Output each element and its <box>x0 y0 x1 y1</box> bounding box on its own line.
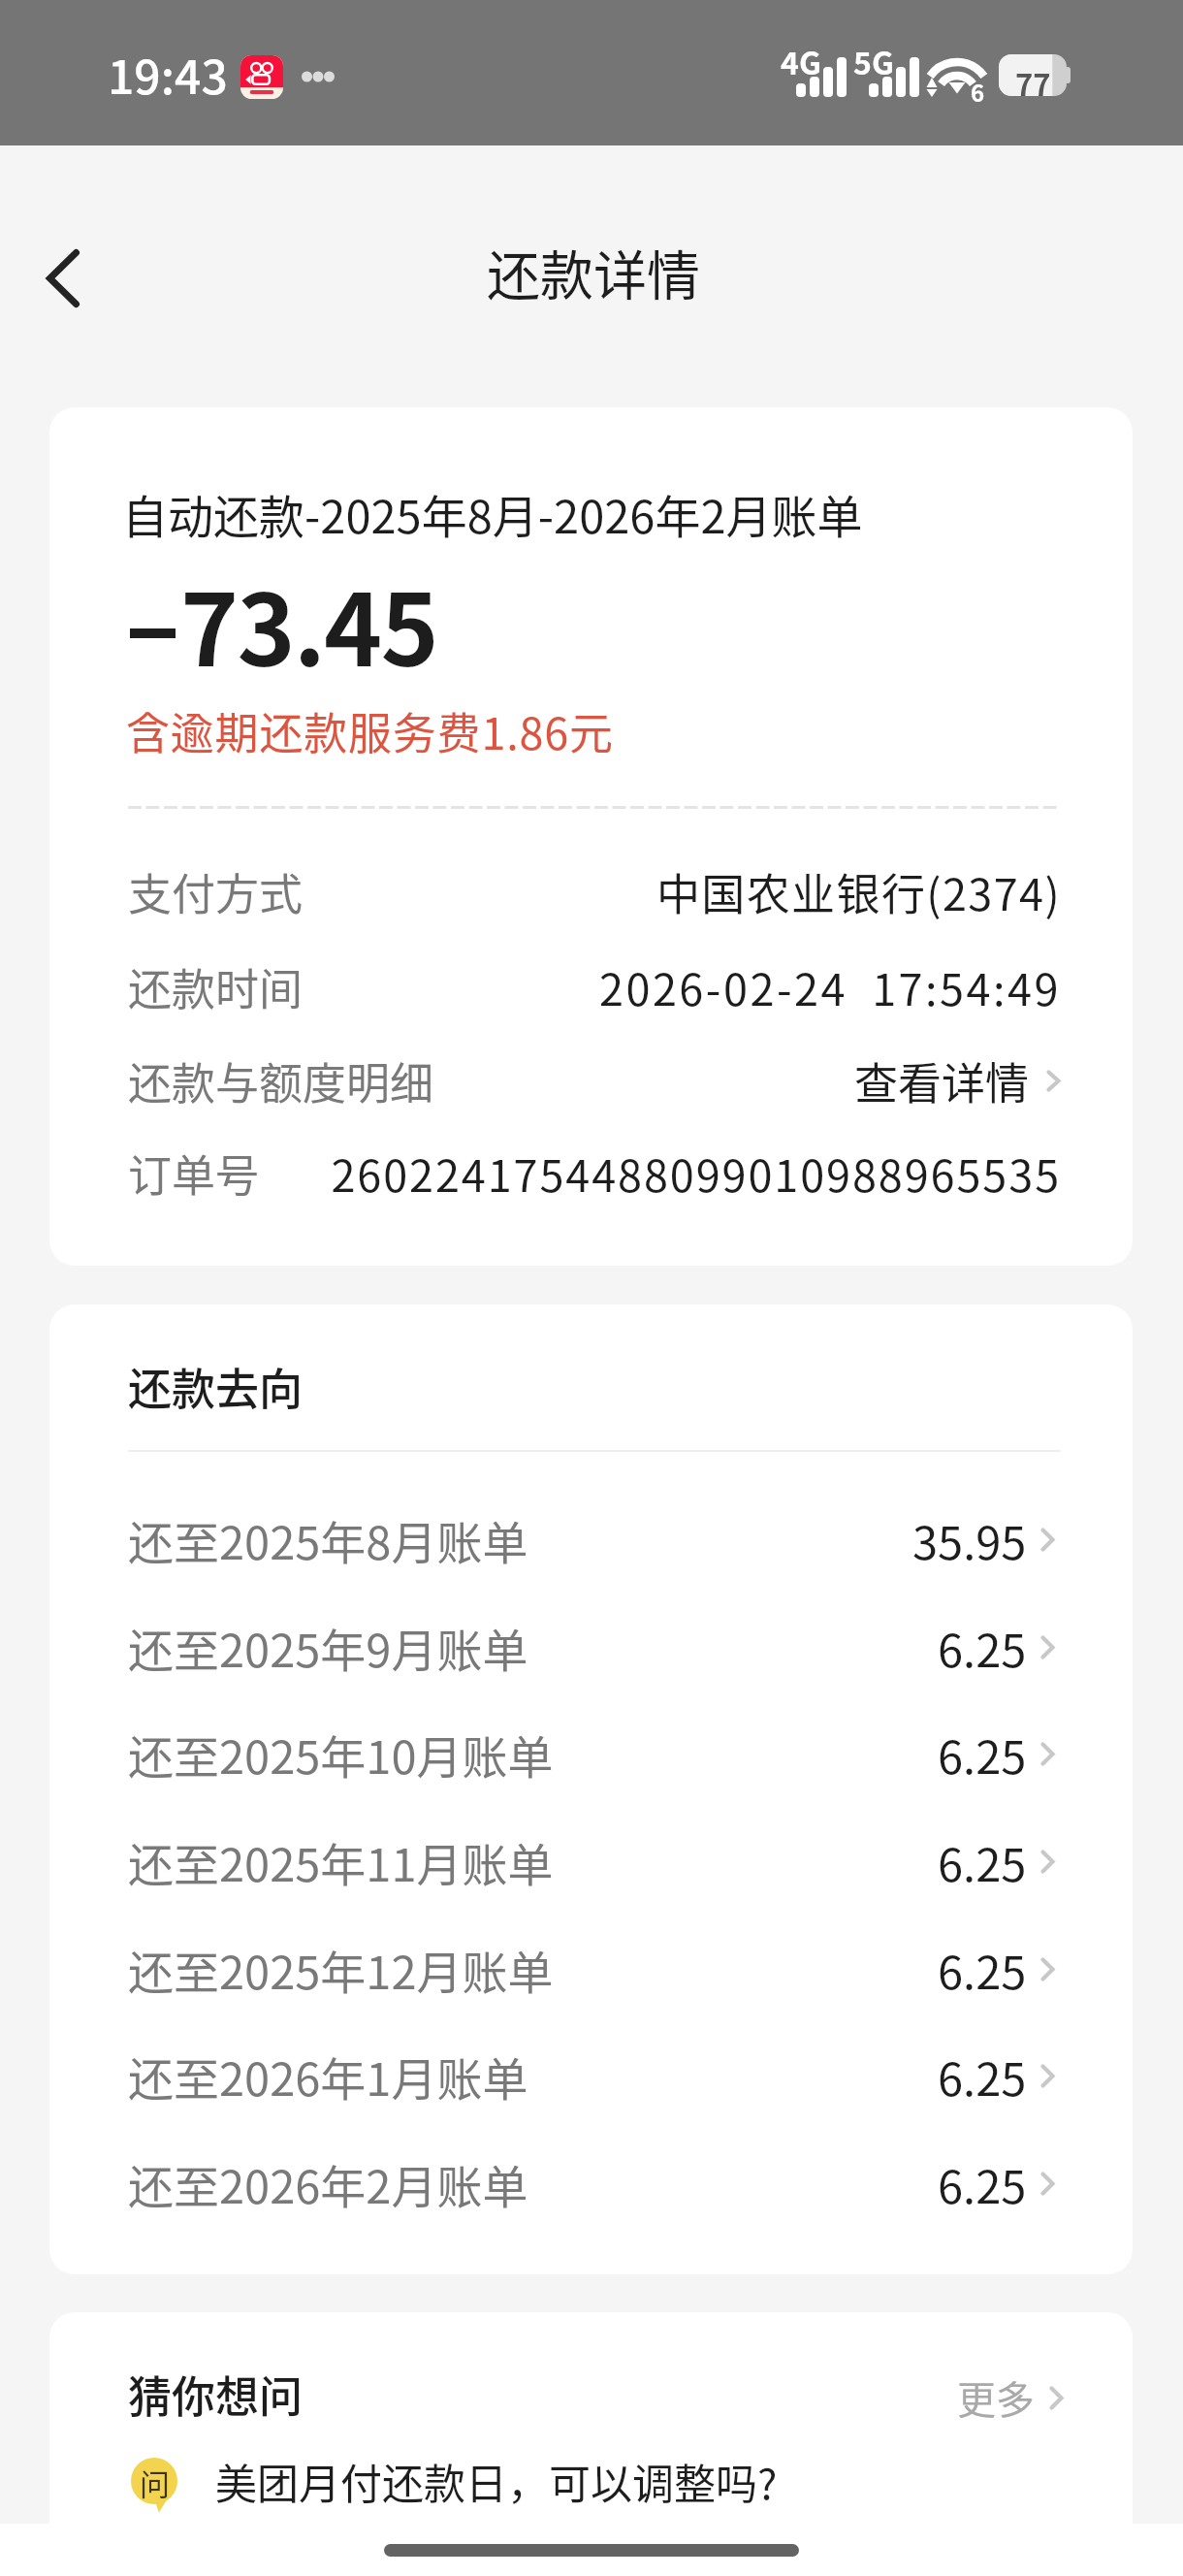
staticText: 自动还款-2025年8月-2026年2月账单 <box>122 480 863 546</box>
button[interactable]: 还款时间 <box>128 940 1061 1033</box>
staticText: 35.95 <box>912 1506 1027 1572</box>
staticText: 还至2025年9月账单 <box>128 1614 528 1680</box>
staticText: 还至2026年1月账单 <box>128 2043 528 2109</box>
button[interactable]: 还至2025年9月账单 <box>128 1594 1055 1700</box>
button[interactable]: 还至2026年1月账单 <box>128 2022 1055 2129</box>
staticText: 73.45 <box>180 552 437 695</box>
staticText: 还款与额度明细 <box>128 1049 434 1112</box>
staticText: 还至2026年2月账单 <box>128 2150 528 2216</box>
staticText: 订单号 <box>128 1142 260 1205</box>
staticText: 2602241754488099010988965535 <box>270 1142 1061 1205</box>
button[interactable]: 还至2025年10月账单 <box>128 1700 1055 1807</box>
button[interactable]: 支付方式 <box>128 845 1061 938</box>
button[interactable]: 还款与额度明细 <box>128 1034 1061 1127</box>
button[interactable]: 还至2025年8月账单 <box>128 1486 1055 1593</box>
staticText: 6.25 <box>938 2043 1027 2109</box>
button[interactable]: 还至2025年12月账单 <box>128 1916 1055 2022</box>
staticText: 还至2025年8月账单 <box>128 1506 528 1572</box>
staticText: 支付方式 <box>128 860 304 923</box>
staticText: 77 <box>1015 61 1051 105</box>
button[interactable]: 更多 <box>957 2360 1064 2435</box>
button[interactable]: 订单号 <box>128 1126 1061 1219</box>
staticText: 2026-02-24 17:54:49 <box>313 955 1061 1018</box>
button[interactable]: 还至2025年11月账单 <box>128 1808 1055 1915</box>
staticText: 还款时间 <box>128 955 304 1018</box>
staticText: 19:43 <box>108 40 228 108</box>
staticText: 还至2025年11月账单 <box>128 1828 554 1894</box>
staticText: 6.25 <box>938 1936 1027 2002</box>
staticText: 4G <box>781 39 821 83</box>
staticText: 5G <box>853 39 894 83</box>
staticText: 还款去向 <box>128 1355 304 1418</box>
staticText: 6.25 <box>938 1721 1027 1787</box>
staticText: 还至2025年12月账单 <box>128 1936 554 2002</box>
button[interactable]: Back <box>13 228 113 329</box>
staticText: 还款详情 <box>487 233 701 310</box>
button[interactable]: 问 <box>131 2440 1133 2522</box>
staticText: 中国农业银行(2374) <box>313 860 1061 923</box>
staticText: 问 <box>140 2461 170 2504</box>
button[interactable]: 还至2026年2月账单 <box>128 2130 1055 2237</box>
staticText: 美团月付还款日，可以调整吗? <box>215 2451 778 2511</box>
staticText: 猜你想问 <box>128 2363 304 2426</box>
staticText: 还至2025年10月账单 <box>128 1721 554 1787</box>
staticText: 6.25 <box>938 1828 1027 1894</box>
staticText: 含逾期还款服务费1.86元 <box>126 699 614 762</box>
staticText: 6.25 <box>938 2150 1027 2216</box>
staticText: 查看详情 <box>444 1049 1029 1112</box>
staticText: 6 <box>971 75 985 109</box>
staticText: 更多 <box>957 2369 1035 2426</box>
staticText: 6.25 <box>938 1614 1027 1680</box>
